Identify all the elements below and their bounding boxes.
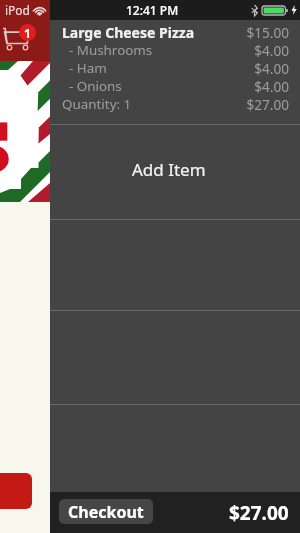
button[interactable]: Checkout bbox=[59, 499, 153, 524]
staticText: Add Item bbox=[132, 158, 206, 181]
staticText: 12:41 PM bbox=[126, 2, 179, 18]
staticText: $4.00 bbox=[254, 77, 289, 95]
staticText: 1 bbox=[24, 25, 31, 41]
staticText: $15.00 bbox=[246, 23, 289, 41]
staticText: Quantity: 1 bbox=[62, 95, 246, 113]
staticText: Large Cheese Pizza bbox=[62, 23, 246, 41]
staticText: - Mushrooms bbox=[62, 41, 254, 59]
staticText: $27.00 bbox=[246, 95, 289, 113]
staticText: $4.00 bbox=[254, 59, 289, 77]
staticText: - Ham bbox=[62, 59, 254, 77]
staticText: Checkout bbox=[68, 501, 144, 523]
button[interactable]: Order bbox=[0, 473, 32, 509]
staticText: $4.00 bbox=[254, 41, 289, 59]
button[interactable]: Add Item bbox=[50, 125, 300, 219]
staticText: - Onions bbox=[62, 77, 254, 95]
staticText: $27.00 bbox=[229, 500, 289, 526]
staticText: iPod bbox=[5, 2, 30, 18]
